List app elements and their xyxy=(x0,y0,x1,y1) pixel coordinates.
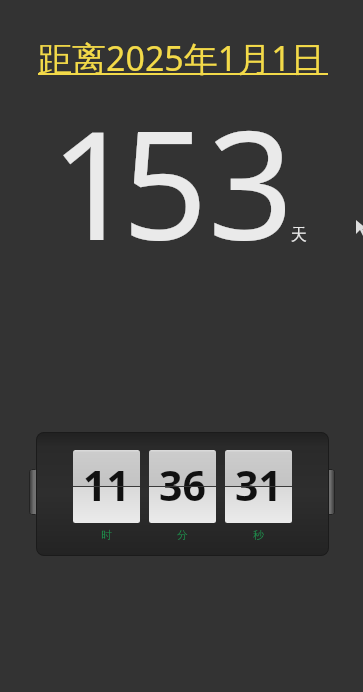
staticText: 分 xyxy=(177,528,188,542)
staticText: 天 xyxy=(291,225,307,245)
staticText: 1 xyxy=(50,80,136,284)
button[interactable]: 距离2025年1月1日 xyxy=(0,26,363,82)
button[interactable]: Seconds xyxy=(225,450,292,523)
staticText: 秒 xyxy=(253,528,264,542)
staticText: 53 xyxy=(122,80,294,284)
staticText: 时 xyxy=(101,528,112,542)
button[interactable]: Minutes xyxy=(149,450,216,523)
staticText: 11 xyxy=(83,457,130,513)
staticText: 距离2025年1月1日 xyxy=(38,35,325,81)
button[interactable]: Hours xyxy=(73,450,140,523)
staticText: 36 xyxy=(159,457,206,513)
staticText: 31 xyxy=(235,457,282,513)
